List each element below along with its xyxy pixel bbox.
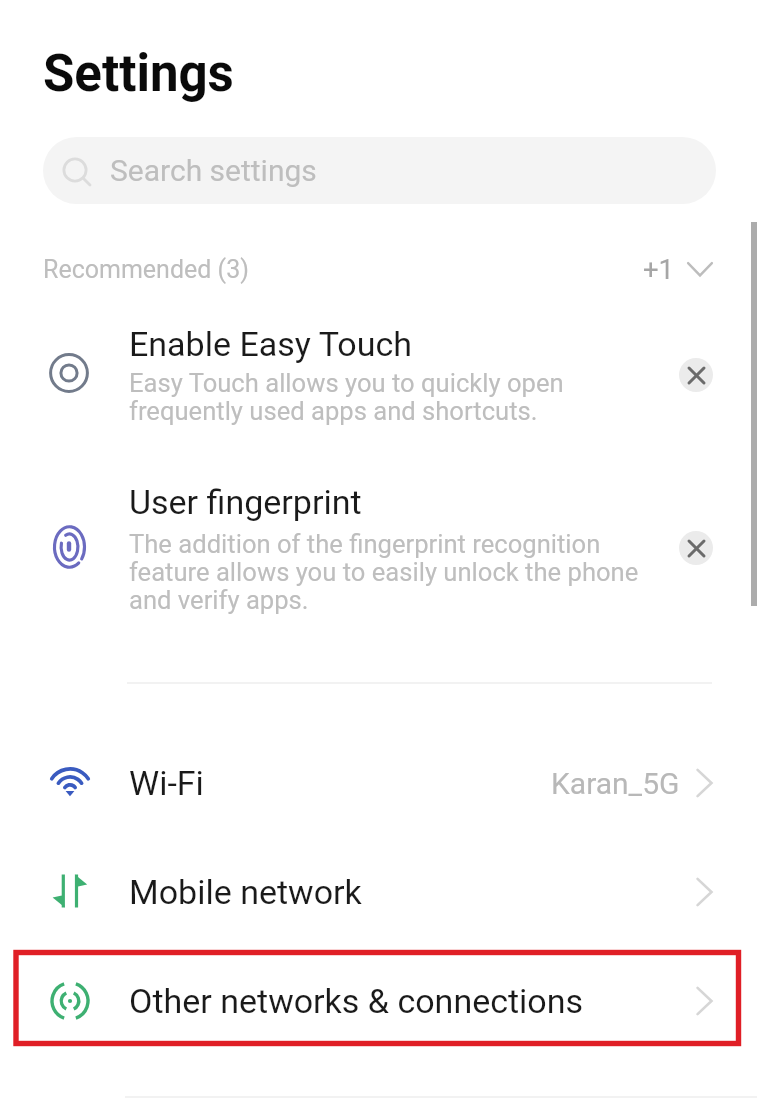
button[interactable]: Recommended (3) (0, 249, 757, 289)
staticText: Wi-Fi (129, 763, 204, 803)
staticText: The addition of the fingerprint recognit… (129, 529, 639, 615)
staticText: Mobile network (129, 872, 362, 912)
button[interactable]: Search settings (43, 137, 716, 204)
staticText: User fingerprint (129, 482, 362, 522)
staticText: Settings (43, 44, 234, 104)
staticText: Other networks & connections (129, 981, 584, 1021)
staticText: Search settings (110, 153, 317, 188)
staticText: Enable Easy Touch (129, 324, 412, 364)
button[interactable]: Wi-Fi (0, 729, 757, 837)
staticText: Karan_5G (551, 766, 680, 801)
staticText: Recommended (3) (43, 255, 249, 284)
staticText: +1 (643, 253, 675, 285)
button[interactable]: Mobile network (0, 838, 757, 946)
button[interactable]: Dismiss (679, 531, 713, 565)
button[interactable]: Other networks & connections (0, 947, 757, 1055)
button[interactable]: Dismiss (679, 358, 713, 392)
staticText: Easy Touch allows you to quickly open fr… (129, 368, 564, 426)
